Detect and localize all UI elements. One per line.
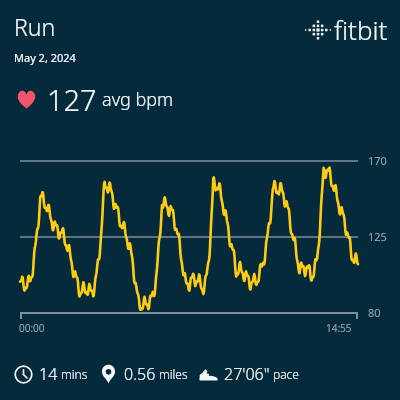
staticText: fitbit	[334, 12, 388, 47]
button[interactable]: Pace	[199, 363, 299, 385]
other: Heart rate	[16, 89, 37, 110]
staticText: Run	[14, 11, 56, 42]
staticText: miles	[159, 366, 188, 382]
staticText: 14:55	[326, 321, 352, 335]
staticText: 80	[368, 305, 381, 320]
staticText: 14	[39, 363, 58, 385]
staticText: 27'06"	[224, 363, 270, 385]
staticText: 125	[368, 229, 387, 244]
button[interactable]: Duration	[14, 363, 88, 385]
staticText: 127	[47, 80, 97, 119]
staticText: mins	[61, 366, 88, 382]
button[interactable]: Distance	[99, 363, 188, 385]
other: Pace	[199, 365, 218, 384]
other: Distance	[99, 365, 118, 384]
staticText: 170	[368, 153, 387, 168]
staticText: pace	[273, 366, 299, 382]
button[interactable]: fitbit	[306, 12, 388, 47]
staticText: avg bpm	[102, 87, 174, 112]
other: Duration	[14, 365, 33, 384]
staticText: May 2, 2024	[14, 50, 76, 65]
staticText: 0.56	[124, 363, 156, 385]
staticText: 00:00	[19, 321, 45, 335]
